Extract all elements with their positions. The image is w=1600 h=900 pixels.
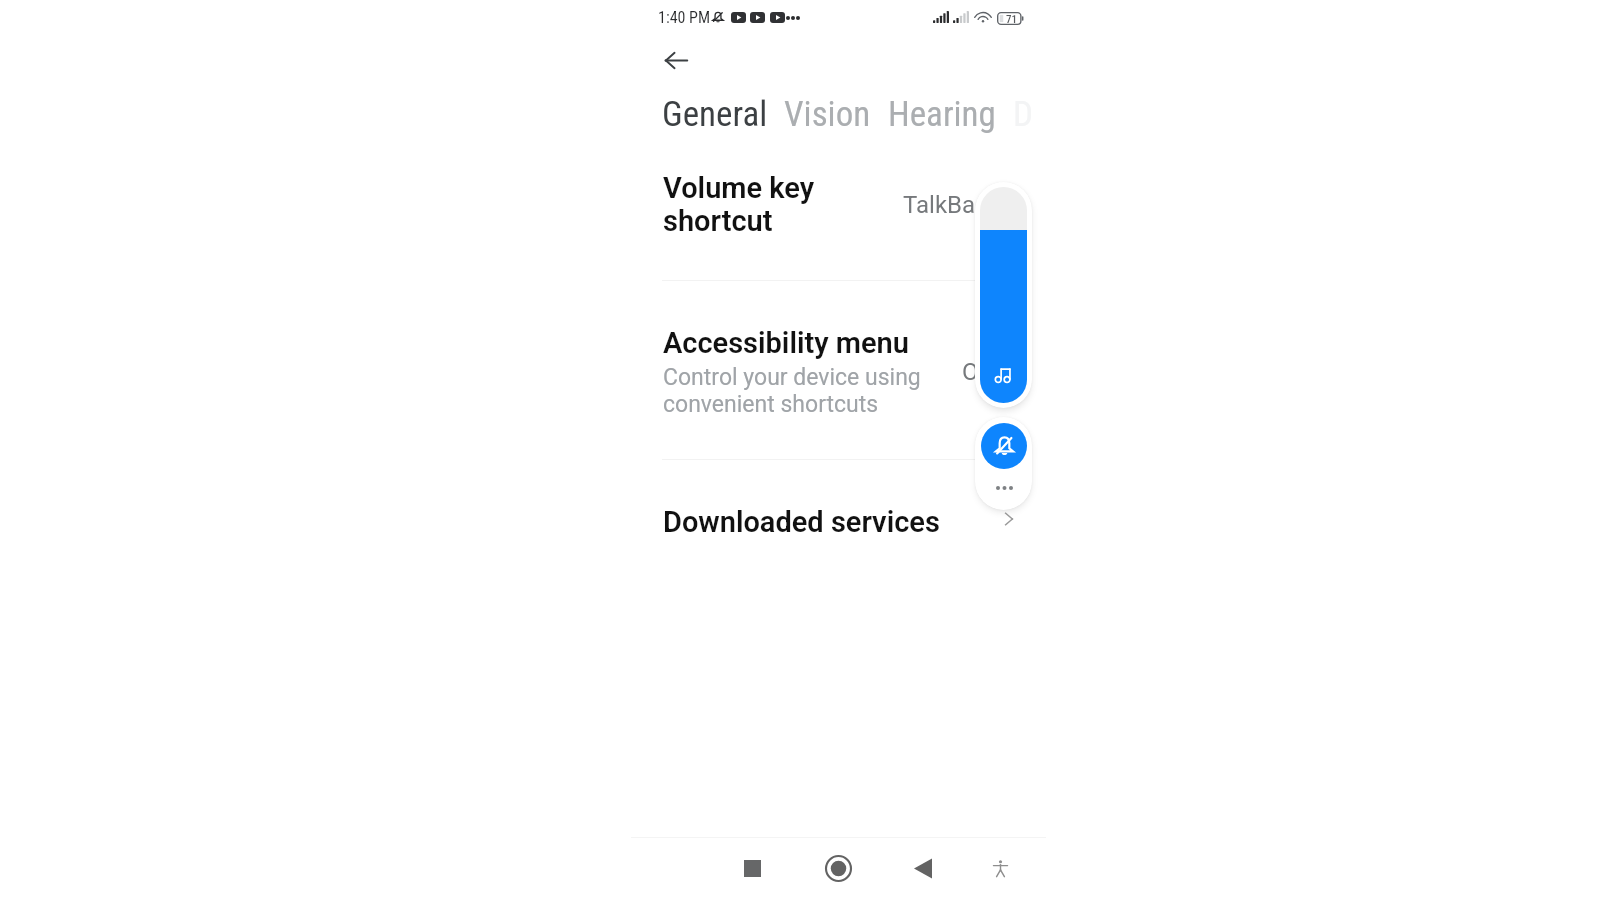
button[interactable]: Silent mode: [981, 423, 1027, 469]
button[interactable]: More volume options: [987, 477, 1021, 499]
staticText: Off: [962, 358, 996, 386]
staticText: TalkBack: [903, 191, 1000, 219]
button[interactable]: Media volume slider: [975, 182, 1032, 408]
button[interactable]: Recent apps: [731, 847, 774, 890]
button[interactable]: General: [662, 94, 768, 135]
staticText: Control your device using convenient sho…: [663, 364, 921, 417]
button[interactable]: Navigate up: [652, 36, 700, 84]
button[interactable]: Vision: [784, 94, 871, 135]
staticText: Downloaded services: [663, 505, 940, 539]
staticText: Vision: [784, 94, 871, 135]
button[interactable]: Back: [901, 847, 944, 890]
staticText: 71: [1006, 13, 1017, 26]
button[interactable]: D: [1013, 94, 1033, 135]
staticText: D: [1013, 94, 1033, 135]
staticText: Hearing: [888, 94, 996, 135]
staticText: General: [662, 94, 768, 135]
button[interactable]: Accessibility menu: [631, 281, 1046, 459]
button[interactable]: Home: [817, 847, 860, 890]
button[interactable]: Volume key shortcut: [631, 133, 1046, 280]
button[interactable]: Hearing: [888, 94, 996, 135]
button[interactable]: Accessibility shortcut: [979, 847, 1022, 890]
staticText: Volume key shortcut: [663, 171, 815, 238]
button[interactable]: Downloaded services: [631, 460, 1046, 552]
staticText: 1:40 PM: [658, 8, 711, 27]
staticText: Accessibility menu: [663, 326, 910, 360]
